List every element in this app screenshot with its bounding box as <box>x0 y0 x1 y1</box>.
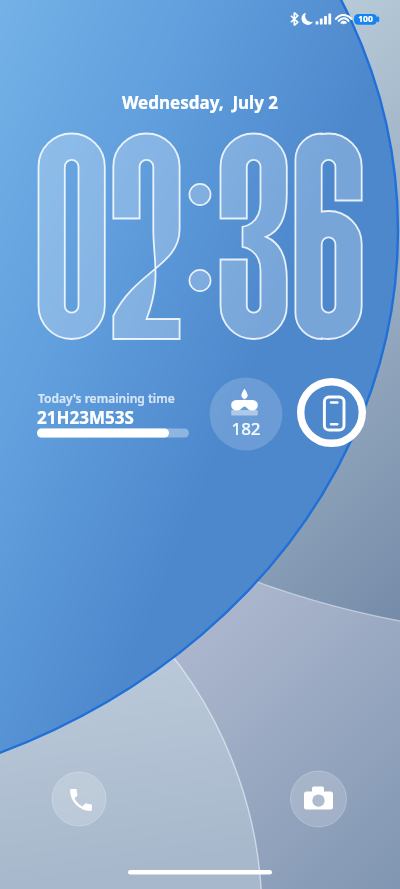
staticText: 21H23M53S <box>37 406 134 429</box>
button[interactable]: Camera <box>290 771 347 828</box>
button[interactable]: Device control <box>297 378 366 447</box>
button[interactable]: Health widget, 182 steps <box>209 377 282 450</box>
staticText: Today's remaining time <box>38 390 175 406</box>
staticText: 100 <box>354 13 377 25</box>
button[interactable]: Phone <box>52 772 106 826</box>
staticText: 182 <box>224 417 268 439</box>
staticText: Wednesday, July 2 <box>0 91 400 889</box>
